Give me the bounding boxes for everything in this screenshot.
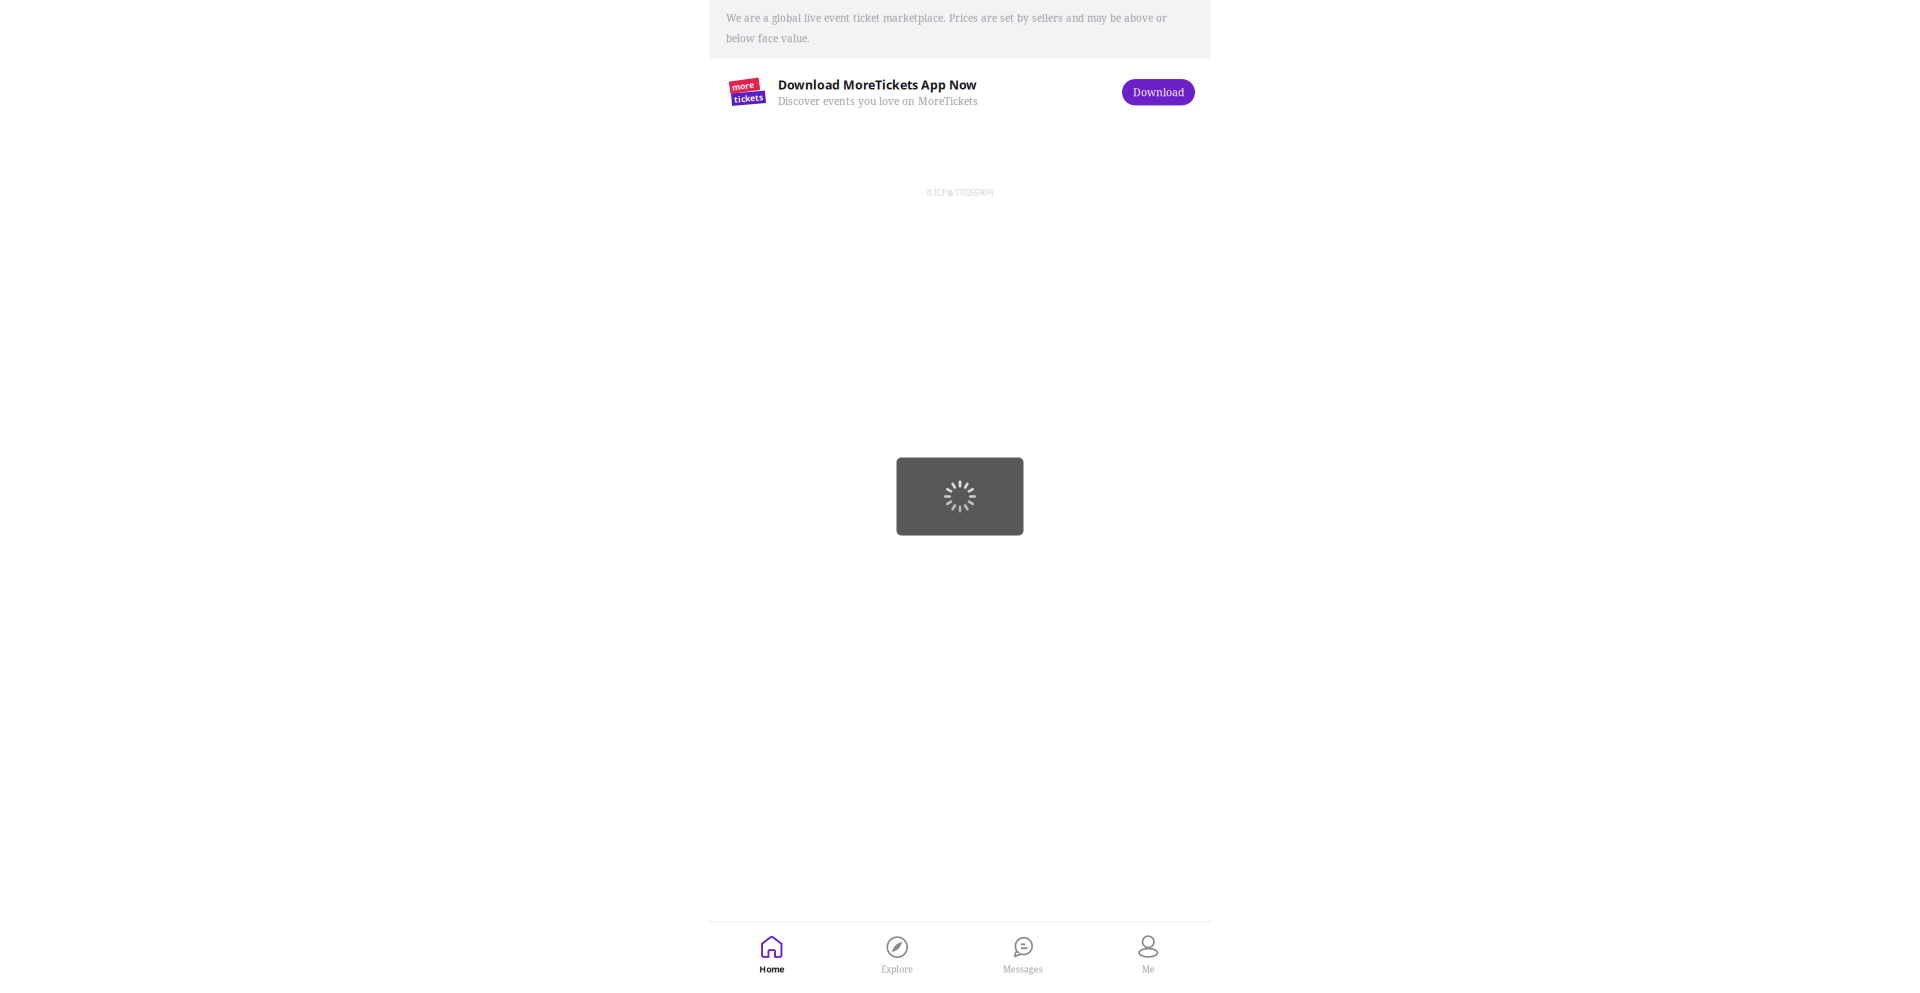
staticText: tickets: [734, 92, 763, 104]
staticText: Explore: [881, 963, 913, 975]
staticText: Discover events you love on MoreTickets: [778, 94, 978, 108]
staticText: more: [732, 80, 754, 91]
staticText: Messages: [1003, 963, 1043, 975]
staticText: Download MoreTickets App Now: [778, 76, 977, 93]
staticText: Home: [759, 963, 784, 975]
staticText: Download: [1133, 85, 1184, 99]
button[interactable]: Home: [709, 936, 834, 975]
staticText: We are a global live event ticket market…: [726, 11, 1167, 45]
button[interactable]: Download: [1122, 79, 1195, 105]
staticText: Me: [1142, 963, 1155, 975]
staticText: 京ICP备17026590号: [925, 187, 994, 198]
button[interactable]: Me: [1085, 936, 1211, 975]
button[interactable]: Messages: [960, 936, 1085, 975]
button[interactable]: Explore: [834, 936, 960, 975]
